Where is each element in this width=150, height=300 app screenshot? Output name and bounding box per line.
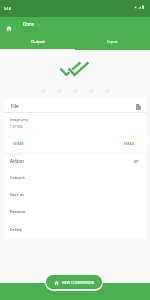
staticText: Delete bbox=[10, 227, 23, 232]
button[interactable]: Rate bbox=[71, 87, 79, 95]
staticText: NEW CONVERSION bbox=[62, 280, 95, 285]
staticText: 1.87 MB bbox=[10, 124, 23, 128]
button[interactable]: NEW CONVERSION bbox=[46, 275, 102, 289]
button[interactable]: File details bbox=[131, 100, 146, 113]
staticText: File bbox=[11, 103, 19, 109]
staticText: Action bbox=[10, 158, 24, 164]
button[interactable]: Delete bbox=[4, 221, 146, 238]
staticText: Save as bbox=[10, 192, 24, 197]
button[interactable]: Rate bbox=[87, 87, 95, 95]
button[interactable]: SHARE bbox=[11, 139, 26, 148]
staticText: Input bbox=[107, 39, 118, 44]
button[interactable]: Sort actions bbox=[134, 159, 139, 163]
button[interactable]: Output bbox=[0, 38, 75, 50]
button[interactable]: Home bbox=[1, 20, 17, 36]
button[interactable]: Save as bbox=[4, 186, 146, 203]
staticText: Rename bbox=[10, 209, 26, 214]
button[interactable]: Rate bbox=[103, 87, 111, 95]
staticText: image.png bbox=[10, 117, 28, 122]
staticText: EMAIL bbox=[124, 141, 135, 146]
staticText: SHARE bbox=[13, 141, 24, 146]
staticText: 5:18 bbox=[4, 6, 11, 10]
button[interactable]: Input bbox=[75, 38, 150, 50]
button[interactable]: Rename bbox=[4, 203, 146, 220]
staticText: Convert bbox=[10, 175, 25, 180]
button[interactable]: Rate bbox=[39, 87, 47, 95]
staticText: Done bbox=[23, 21, 35, 27]
button[interactable]: Convert bbox=[4, 169, 146, 186]
button[interactable]: EMAIL bbox=[122, 139, 137, 148]
button[interactable]: Rate bbox=[55, 87, 63, 95]
staticText: Output bbox=[31, 39, 45, 44]
